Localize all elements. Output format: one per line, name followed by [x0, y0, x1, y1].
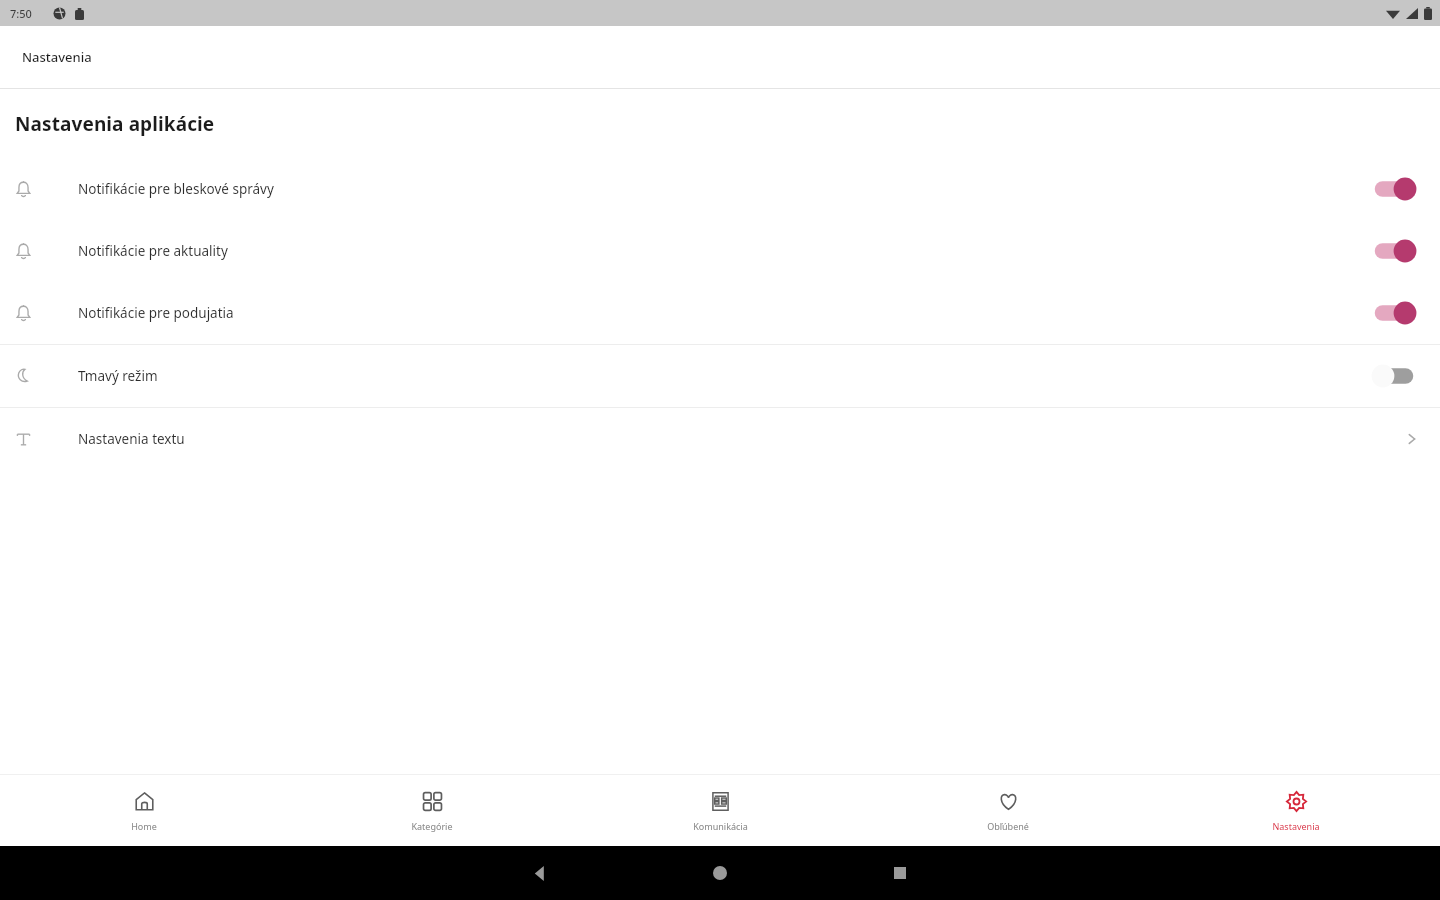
other: Open text settings — [1404, 432, 1418, 446]
staticText: Notifikácie pre aktuality — [78, 242, 1368, 260]
staticText: Kategórie — [411, 820, 453, 832]
button[interactable]: Toggle on — [1368, 174, 1420, 204]
button[interactable]: Nastavenia — [1152, 775, 1440, 846]
staticText: Notifikácie pre podujatia — [78, 304, 1368, 322]
button[interactable]: Recents — [810, 858, 990, 888]
staticText: Home — [131, 820, 157, 832]
staticText: Komunikácia — [693, 820, 748, 832]
button[interactable]: Notifikácie pre aktuality — [0, 220, 1440, 282]
button[interactable]: Toggle on — [1368, 236, 1420, 266]
staticText: 7:50 — [10, 6, 32, 21]
button[interactable]: Home — [0, 775, 288, 846]
button[interactable]: Toggle off — [1368, 361, 1420, 391]
staticText: Nastavenia — [22, 48, 92, 66]
button[interactable]: Notifikácie pre bleskové správy — [0, 158, 1440, 220]
button[interactable]: Home — [630, 858, 810, 888]
button[interactable]: Notifikácie pre podujatia — [0, 282, 1440, 344]
staticText: Nastavenia textu — [78, 430, 1404, 448]
button[interactable]: Komunikácia — [576, 775, 864, 846]
staticText: Nastavenia aplikácie — [15, 111, 215, 137]
button[interactable]: Back — [450, 858, 630, 888]
button[interactable]: Nastavenia textu — [0, 408, 1440, 470]
button[interactable]: Tmavý režim — [0, 345, 1440, 407]
staticText: Tmavý režim — [78, 367, 1368, 385]
button[interactable]: Kategórie — [288, 775, 576, 846]
button[interactable]: Toggle on — [1368, 298, 1420, 328]
staticText: Nastavenia — [1272, 820, 1320, 832]
staticText: Obľúbené — [987, 820, 1029, 832]
button[interactable]: Obľúbené — [864, 775, 1152, 846]
staticText: Notifikácie pre bleskové správy — [78, 180, 1368, 198]
